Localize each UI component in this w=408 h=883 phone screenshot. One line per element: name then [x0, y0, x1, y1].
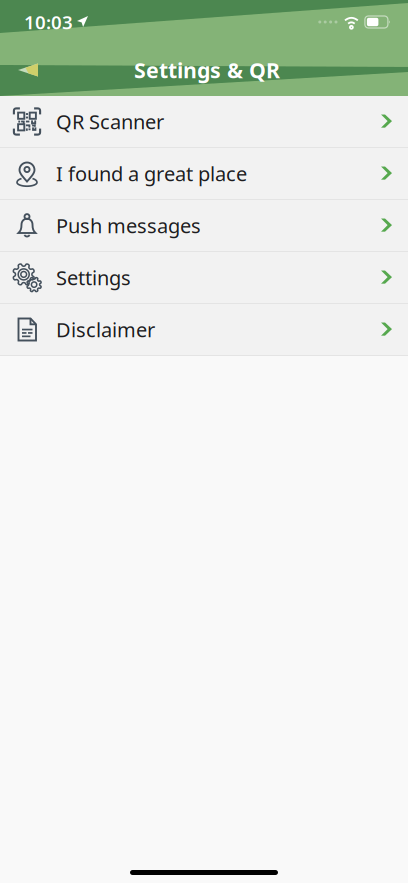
button[interactable]: Disclaimer	[0, 304, 408, 356]
staticText: QR Scanner	[56, 108, 164, 135]
staticText: Push messages	[56, 212, 201, 239]
button[interactable]: Back	[0, 44, 50, 95]
staticText: 10:03	[24, 10, 73, 34]
button[interactable]: Settings	[0, 252, 408, 304]
staticText: Settings & QR	[134, 56, 280, 84]
staticText: Disclaimer	[56, 316, 155, 343]
staticText: I found a great place	[56, 160, 247, 187]
button[interactable]: QR Scanner	[0, 96, 408, 148]
button[interactable]: Push messages	[0, 200, 408, 252]
staticText: Settings	[56, 264, 131, 291]
button[interactable]: I found a great place	[0, 148, 408, 200]
